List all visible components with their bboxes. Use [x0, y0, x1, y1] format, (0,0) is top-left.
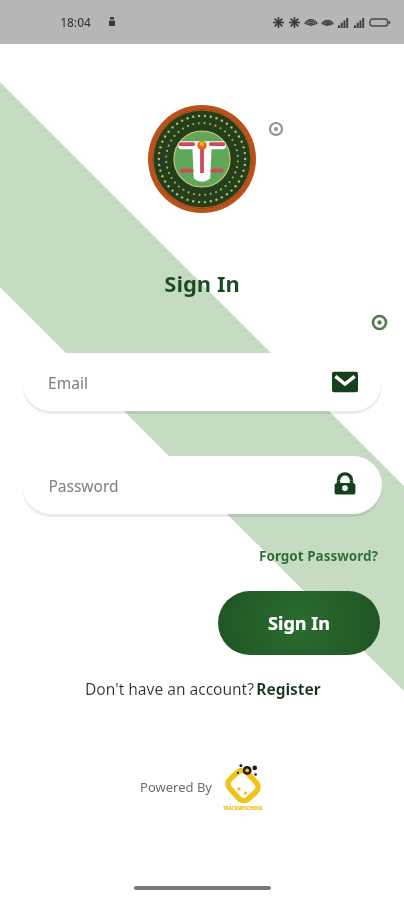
button[interactable]: Sign In	[218, 591, 380, 655]
staticText: Forgot Password?	[259, 547, 378, 565]
staticText: Register	[256, 678, 321, 699]
staticText: Sign In	[268, 611, 330, 636]
staticText: Email	[48, 372, 88, 393]
staticText: TRACKMYSCHOOL	[223, 805, 263, 811]
staticText: 18:04	[60, 14, 91, 30]
staticText: Don't have an account?	[83, 678, 256, 699]
other: Show password	[332, 472, 358, 498]
staticText: Password	[48, 475, 119, 496]
other: Email	[332, 369, 358, 395]
button[interactable]: Password	[22, 456, 382, 514]
button[interactable]: Forgot Password?	[255, 544, 382, 568]
staticText: Sign In	[164, 268, 240, 298]
button[interactable]: Email	[22, 353, 382, 411]
button[interactable]: Register	[256, 678, 321, 699]
staticText: Powered By	[140, 778, 212, 796]
